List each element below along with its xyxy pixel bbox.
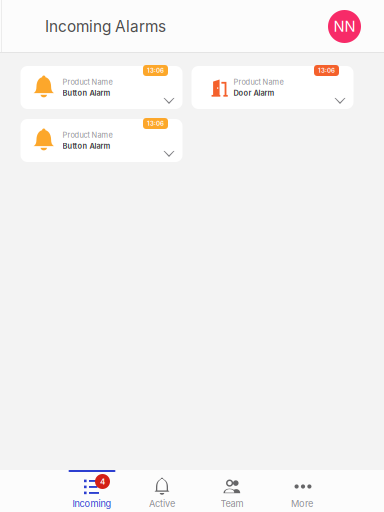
button[interactable]: Product Name <box>23 119 185 162</box>
staticText: 13:06 <box>318 67 335 74</box>
staticText: Door Alarm <box>233 88 274 97</box>
button[interactable]: Product Name <box>23 66 185 109</box>
button[interactable]: Account <box>328 10 361 43</box>
staticText: More <box>291 498 313 509</box>
staticText: Product Name <box>233 77 283 86</box>
staticText: Button Alarm <box>62 88 110 97</box>
button[interactable]: Team <box>197 470 267 512</box>
button[interactable]: 4 <box>57 470 127 512</box>
staticText: Button Alarm <box>62 141 110 150</box>
staticText: Product Name <box>62 77 112 86</box>
staticText: 13:06 <box>147 67 164 74</box>
button[interactable]: Product Name <box>194 66 356 109</box>
staticText: Incoming Alarms <box>45 17 166 36</box>
staticText: Product Name <box>62 130 112 139</box>
staticText: NN <box>333 18 355 35</box>
staticText: Team <box>220 498 243 509</box>
staticText: Incoming <box>72 498 111 509</box>
staticText: 13:06 <box>147 120 164 127</box>
staticText: 4 <box>100 477 105 486</box>
button[interactable]: More <box>267 470 337 512</box>
staticText: Active <box>149 498 175 509</box>
button[interactable]: Active <box>127 470 197 512</box>
